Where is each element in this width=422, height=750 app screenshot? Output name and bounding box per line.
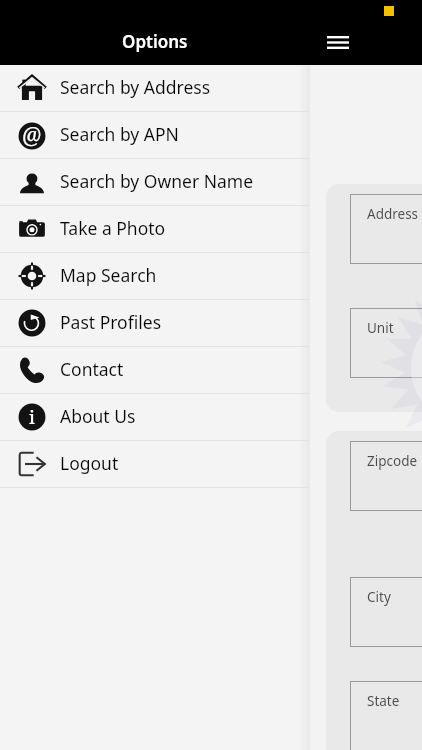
button[interactable]: Take a Photo xyxy=(0,206,310,252)
staticText: Options xyxy=(122,30,188,53)
staticText: Take a Photo xyxy=(60,216,166,240)
staticText: Logout xyxy=(60,451,119,475)
button[interactable]: Address xyxy=(350,194,422,264)
staticText: About Us xyxy=(60,404,136,428)
button[interactable]: i xyxy=(0,394,310,440)
button[interactable]: City xyxy=(350,577,422,647)
staticText: Past Profiles xyxy=(60,310,162,334)
button[interactable]: @ xyxy=(0,112,310,158)
button[interactable]: Contact xyxy=(0,347,310,393)
button[interactable]: Past Profiles xyxy=(0,300,310,346)
button[interactable]: Search by Owner Name xyxy=(0,159,310,205)
staticText: Contact xyxy=(60,357,124,381)
button[interactable]: Map Search xyxy=(0,253,310,299)
staticText: @ xyxy=(22,121,42,150)
staticText: City xyxy=(367,588,391,606)
button[interactable]: Search by Address xyxy=(0,65,310,111)
button[interactable]: Open navigation menu xyxy=(318,22,358,62)
staticText: Search by Address xyxy=(60,75,211,99)
staticText: State xyxy=(367,692,400,710)
staticText: Search by APN xyxy=(60,122,179,146)
staticText: i xyxy=(29,405,35,430)
staticText: Search by Owner Name xyxy=(60,169,254,193)
button[interactable]: Zipcode xyxy=(350,441,422,511)
staticText: Address xyxy=(367,205,419,223)
button[interactable]: Unit xyxy=(350,308,422,378)
button[interactable]: Logout xyxy=(0,441,310,487)
button[interactable]: State xyxy=(350,681,422,750)
staticText: Unit xyxy=(367,319,394,337)
staticText: Zipcode xyxy=(367,452,418,470)
staticText: Map Search xyxy=(60,263,157,287)
